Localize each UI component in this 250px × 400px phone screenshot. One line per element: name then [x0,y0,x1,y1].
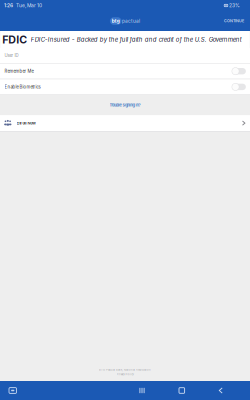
staticText: 23% [229,2,240,8]
button[interactable]: Remember Me [0,64,250,79]
staticText: BTG Pactual Bank, National Association [99,368,151,371]
staticText: Remember Me [5,69,34,74]
button[interactable]: Trouble signing in? [105,100,144,110]
staticText: Enable Biometrics [5,84,41,89]
staticText: btg [112,18,120,24]
staticText: Privacy Policy [116,373,133,376]
staticText: FDIC [2,33,27,46]
staticText: CONTINUE [224,19,244,23]
button[interactable]: Privacy Policy [116,373,133,376]
staticText: pactual [122,18,140,24]
staticText: FDIC-Insured - Backed by the full faith … [31,36,242,43]
staticText: Enroll Now [17,121,36,125]
staticText: 1:26 [4,2,13,8]
button[interactable]: Home [175,384,189,397]
button[interactable]: CONTINUE [221,16,247,26]
button[interactable]: Recent apps [135,383,149,397]
button[interactable]: Enable Biometrics [0,79,250,94]
staticText: User ID [5,53,19,58]
staticText: Tue, Mar 10 [13,2,42,8]
button[interactable]: Enroll Now [0,115,250,131]
button[interactable]: Back [215,383,227,398]
staticText: Trouble signing in? [109,103,140,107]
button[interactable]: Switch keyboard [5,384,20,397]
